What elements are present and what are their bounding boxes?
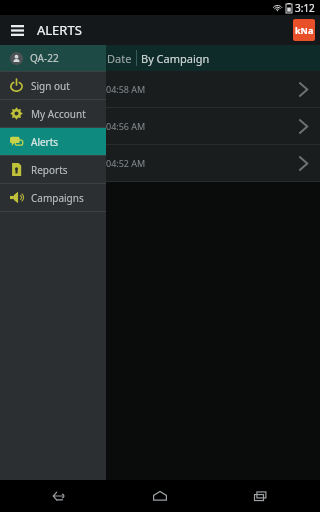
staticText: 04:52 AM <box>106 157 146 169</box>
staticText: Reports <box>31 163 68 177</box>
staticText: Campaigns <box>31 191 84 205</box>
staticText: Date <box>107 51 132 66</box>
staticText: Sign out <box>31 79 70 93</box>
button[interactable]: Reports <box>0 156 106 183</box>
button[interactable]: Campaigns <box>0 184 106 211</box>
button[interactable]: kNa logo <box>293 19 315 41</box>
button[interactable]: Alerts <box>0 128 106 155</box>
button[interactable]: Sign out <box>0 72 106 99</box>
staticText: My Account <box>31 107 86 121</box>
staticText: 04:56 AM <box>106 120 146 132</box>
staticText: QA-22 <box>30 51 59 65</box>
button[interactable]: By Campaign <box>141 45 210 71</box>
staticText: 3:12 <box>295 1 315 15</box>
button[interactable]: Date <box>107 45 132 71</box>
button[interactable]: 04:56 AM <box>0 108 320 144</box>
button[interactable]: Recent apps <box>225 480 295 512</box>
button[interactable]: 04:52 AM <box>0 145 320 181</box>
button[interactable]: Home <box>125 480 195 512</box>
button[interactable]: QA-22 <box>0 45 106 71</box>
staticText: 04:58 AM <box>106 83 146 95</box>
button[interactable]: Open navigation drawer <box>6 19 28 41</box>
staticText: kNa <box>295 24 314 36</box>
staticText: By Campaign <box>141 51 210 66</box>
staticText: Alerts <box>31 135 59 149</box>
staticText: ALERTS <box>37 21 82 39</box>
button[interactable]: My Account <box>0 100 106 127</box>
button[interactable]: 04:58 AM <box>0 71 320 107</box>
button[interactable]: Back <box>25 480 95 512</box>
